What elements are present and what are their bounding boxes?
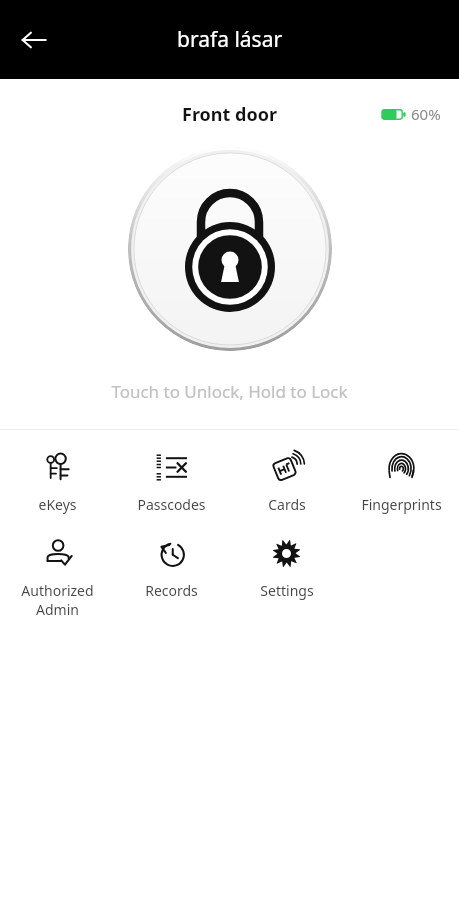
staticText: 60%	[411, 104, 441, 124]
staticText: Settings	[260, 581, 314, 600]
staticText: Fingerprints	[361, 495, 442, 514]
button[interactable]: Fingerprints	[344, 446, 459, 520]
button[interactable]: Settings	[229, 532, 344, 606]
staticText: brafa lásar	[177, 25, 283, 54]
button[interactable]: Cards	[229, 446, 344, 520]
button[interactable]: Back	[10, 16, 58, 64]
button[interactable]: Records	[114, 532, 229, 606]
staticText: Authorized Admin	[21, 581, 94, 619]
staticText: Front door	[182, 102, 277, 127]
staticText: Passcodes	[137, 495, 206, 514]
button[interactable]: Passcodes	[114, 446, 229, 520]
button[interactable]: Lock, touch to unlock	[128, 147, 332, 351]
button[interactable]: eKeys	[0, 446, 114, 520]
staticText: Records	[145, 581, 198, 600]
staticText: Cards	[268, 495, 306, 514]
button[interactable]: Authorized Admin	[0, 532, 114, 625]
staticText: eKeys	[38, 495, 77, 514]
staticText: Touch to Unlock, Hold to Lock	[0, 380, 459, 403]
